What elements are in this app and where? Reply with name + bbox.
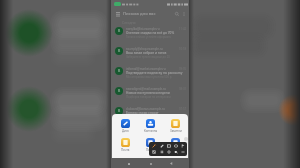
staticText: Ваш заказ собран и готов bbox=[126, 51, 167, 55]
staticText: Диск bbox=[122, 129, 129, 133]
button[interactable]: Markup tool 6 bbox=[150, 149, 158, 155]
staticText: R bbox=[118, 69, 121, 73]
button[interactable]: Поиск bbox=[138, 138, 163, 152]
button[interactable]: R bbox=[111, 45, 189, 65]
staticText: Почта bbox=[121, 148, 130, 152]
staticText: Письма для вас bbox=[123, 11, 156, 17]
button[interactable]: Search bbox=[173, 10, 180, 17]
staticText: Сегодня bbox=[122, 20, 136, 25]
button[interactable]: Заметки bbox=[163, 119, 188, 133]
staticText: Подтвердите подписку на рассылку bbox=[126, 71, 183, 75]
staticText: rassylka@list.example.ru bbox=[126, 27, 160, 31]
button[interactable]: Markup tool 3 bbox=[165, 143, 172, 149]
staticText: R bbox=[118, 49, 121, 53]
staticText: Поиск bbox=[146, 148, 155, 152]
staticText: Осенние скидки на всё до 70% bbox=[126, 31, 175, 35]
staticText: 11:42 bbox=[179, 27, 187, 31]
staticText: Только сейчас успейте оформить bbox=[126, 35, 172, 39]
button[interactable]: Open navigation menu bbox=[114, 10, 121, 17]
button[interactable]: R bbox=[111, 85, 189, 105]
button[interactable]: Markup tool 4 bbox=[172, 143, 179, 149]
button[interactable]: Ещё bbox=[163, 138, 188, 152]
staticText: Контакты bbox=[144, 129, 158, 133]
button[interactable]: More options bbox=[180, 10, 187, 17]
staticText: newsdigest@mail.example.ru bbox=[126, 87, 166, 91]
button[interactable]: R bbox=[111, 105, 189, 125]
staticText: Ещё bbox=[173, 148, 179, 152]
staticText: Заберите в пункте выдачи до 20 bbox=[126, 55, 170, 59]
staticText: Подборка товаров по интересам bbox=[126, 95, 171, 99]
staticText: clubcard@bonus.example.ru bbox=[126, 107, 165, 111]
staticText: Заметки bbox=[170, 129, 182, 133]
button[interactable]: Markup tool 2 bbox=[158, 143, 165, 149]
button[interactable]: Markup tool 5 bbox=[179, 143, 186, 149]
button[interactable]: Close toolbar bbox=[184, 137, 188, 141]
button[interactable]: Back bbox=[167, 159, 176, 168]
button[interactable]: Markup tool 1 bbox=[150, 143, 158, 149]
staticText: infomail@market.example.ru bbox=[126, 67, 166, 71]
button[interactable]: R bbox=[111, 25, 189, 45]
staticText: Мы отправим вам купон на 500 р. bbox=[126, 75, 173, 79]
button[interactable]: Диск bbox=[112, 119, 138, 133]
staticText: Бонусы скоро сгорят bbox=[126, 111, 159, 115]
staticText: R bbox=[118, 89, 121, 93]
button[interactable]: Почта bbox=[112, 138, 138, 152]
button[interactable]: R bbox=[111, 65, 189, 85]
staticText: no-reply@shop.example.ru bbox=[126, 47, 163, 51]
button[interactable]: Markup tool 10 bbox=[179, 149, 186, 155]
button[interactable]: Контакты bbox=[138, 119, 163, 133]
button[interactable]: Markup tool 9 bbox=[172, 149, 179, 155]
button[interactable]: Home bbox=[146, 159, 155, 168]
staticText: R bbox=[118, 29, 121, 33]
button[interactable]: Markup tool 8 bbox=[165, 149, 172, 155]
staticText: Новые поступления недели bbox=[126, 91, 170, 95]
button[interactable]: Markup tool 7 bbox=[158, 149, 165, 155]
staticText: R bbox=[118, 109, 121, 113]
button[interactable]: Recent apps bbox=[124, 159, 133, 168]
